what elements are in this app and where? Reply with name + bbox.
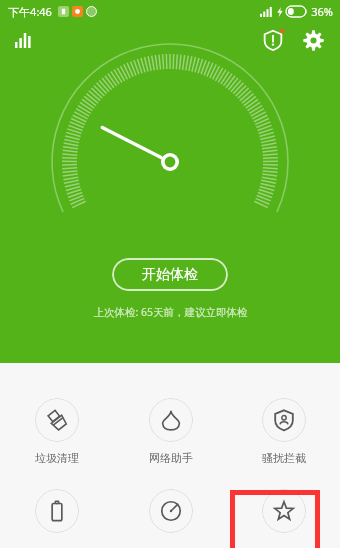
button[interactable]: 垃圾清理: [0, 398, 114, 465]
button[interactable]: 开始体检: [112, 258, 228, 291]
button[interactable]: Tool: [0, 489, 114, 533]
button[interactable]: 网络助手: [114, 398, 227, 465]
button[interactable]: 骚扰拦截: [227, 398, 340, 465]
staticText: 垃圾清理: [35, 451, 79, 465]
staticText: 36%: [311, 4, 333, 19]
staticText: 骚扰拦截: [262, 451, 306, 465]
staticText: 下午4:46: [8, 4, 52, 19]
staticText: 开始体检: [142, 266, 198, 284]
button[interactable]: Statistics: [8, 24, 40, 56]
staticText: 网络助手: [149, 451, 193, 465]
staticText: 上次体检: 65天前，建议立即体检: [93, 305, 248, 319]
button[interactable]: Tool: [114, 489, 227, 533]
button[interactable]: Tool: [227, 489, 340, 533]
button[interactable]: Security: [256, 23, 290, 57]
button[interactable]: Settings: [296, 23, 330, 57]
